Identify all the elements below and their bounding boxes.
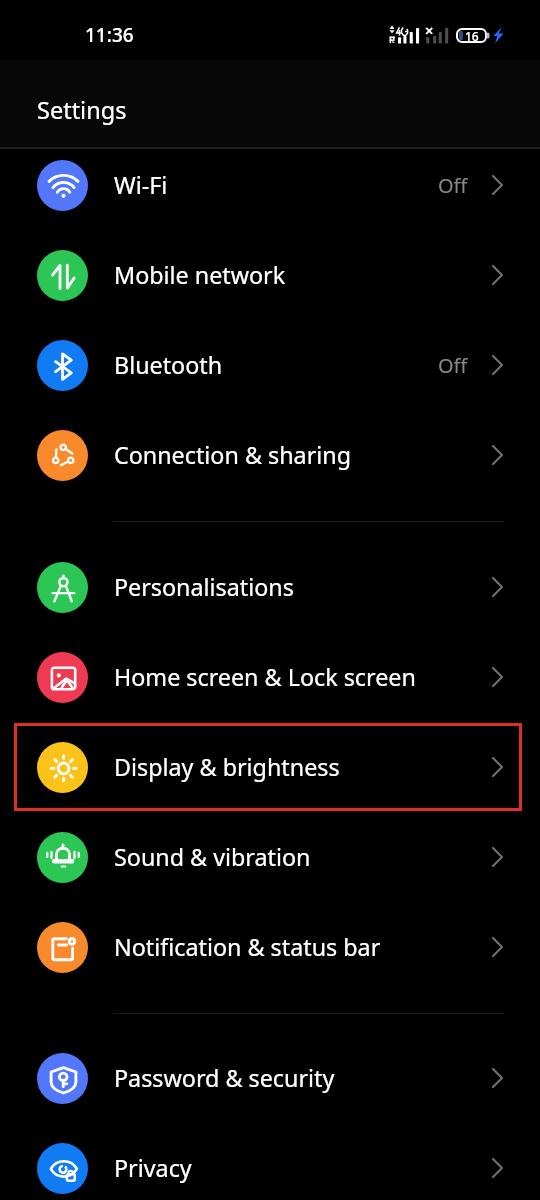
staticText: Notification & status bar bbox=[114, 931, 381, 963]
button[interactable]: Home screen & Lock screen bbox=[0, 632, 540, 722]
button[interactable]: Personalisations bbox=[0, 542, 540, 632]
staticText: Connection & sharing bbox=[114, 439, 351, 471]
staticText: 16 bbox=[465, 28, 479, 43]
staticText: Privacy bbox=[114, 1152, 192, 1184]
staticText: Personalisations bbox=[114, 571, 294, 603]
button[interactable]: Password & security bbox=[0, 1033, 540, 1123]
button[interactable]: Display & brightness bbox=[0, 722, 540, 812]
staticText: Off bbox=[438, 352, 468, 379]
staticText: Off bbox=[438, 172, 468, 199]
staticText: Settings bbox=[37, 94, 127, 126]
staticText: Bluetooth bbox=[114, 349, 223, 381]
button[interactable]: Notification & status bar bbox=[0, 902, 540, 992]
button[interactable]: Wi-Fi bbox=[0, 140, 540, 230]
button[interactable]: Privacy bbox=[0, 1123, 540, 1200]
button[interactable]: Bluetooth bbox=[0, 320, 540, 410]
staticText: Password & security bbox=[114, 1062, 335, 1094]
staticText: Home screen & Lock screen bbox=[114, 661, 416, 693]
button[interactable]: Sound & vibration bbox=[0, 812, 540, 902]
staticText: Mobile network bbox=[114, 259, 286, 291]
staticText: Sound & vibration bbox=[114, 841, 311, 873]
button[interactable]: Mobile network bbox=[0, 230, 540, 320]
staticText: Wi-Fi bbox=[114, 169, 168, 201]
button[interactable]: Connection & sharing bbox=[0, 410, 540, 500]
staticText: 11:36 bbox=[85, 22, 134, 48]
staticText: Display & brightness bbox=[114, 751, 340, 783]
